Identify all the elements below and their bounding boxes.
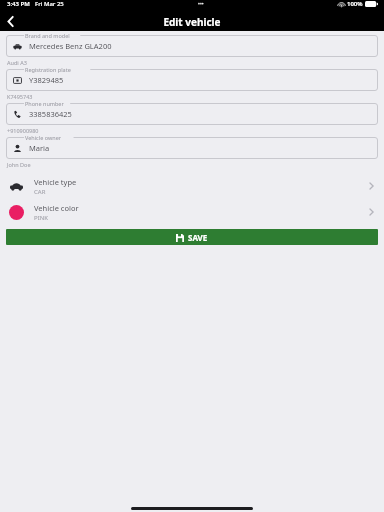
button[interactable]: Vehicle type: [0, 173, 384, 199]
staticText: Brand and model: [25, 32, 70, 39]
button[interactable]: Registration plate: [6, 69, 378, 91]
staticText: K7495743: [7, 93, 33, 100]
staticText: SAVE: [188, 232, 208, 243]
staticText: Y3829485: [29, 75, 64, 85]
staticText: Phone number: [25, 100, 64, 107]
staticText: Fri Mar 25: [35, 0, 64, 8]
button[interactable]: Vehicle color: [0, 199, 384, 225]
staticText: Vehicle color: [34, 203, 79, 213]
button[interactable]: Brand and model: [6, 35, 378, 57]
staticText: 3385836425: [29, 109, 72, 119]
staticText: John Doe: [7, 161, 31, 168]
staticText: •••: [198, 1, 204, 8]
staticText: Edit vehicle: [163, 15, 221, 29]
button[interactable]: Phone number: [6, 103, 378, 125]
staticText: CAR: [34, 188, 46, 196]
staticText: PINK: [34, 214, 48, 222]
staticText: Mercedes Benz GLA200: [29, 41, 112, 51]
button[interactable]: Back: [0, 12, 22, 31]
staticText: +910900980: [7, 127, 39, 134]
staticText: Maria: [29, 143, 50, 153]
staticText: Audi A3: [7, 59, 27, 66]
staticText: 100%: [347, 0, 363, 8]
button[interactable]: SAVE: [6, 229, 378, 245]
staticText: 3:43 PM: [7, 0, 30, 8]
staticText: Vehicle type: [34, 177, 77, 187]
staticText: Registration plate: [25, 66, 71, 73]
staticText: Vehicle owner: [25, 134, 62, 141]
button[interactable]: Vehicle owner: [6, 137, 378, 159]
